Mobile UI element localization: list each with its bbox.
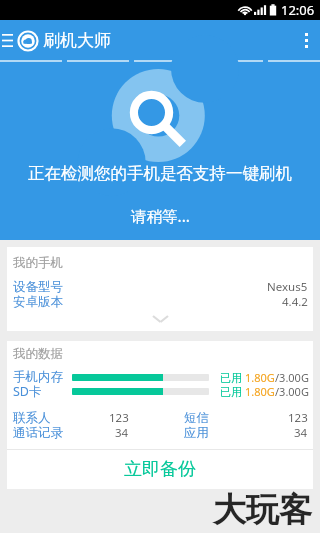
staticText: 34: [115, 425, 129, 441]
staticText: 联系人: [13, 410, 51, 426]
staticText: /3.00G: [275, 370, 309, 385]
staticText: 1.80G: [245, 370, 275, 385]
button[interactable]: 设备型号: [7, 279, 313, 295]
staticText: 34: [294, 425, 308, 441]
staticText: 短信: [184, 410, 209, 426]
button[interactable]: 应用: [184, 425, 308, 441]
staticText: 手机内存: [13, 369, 72, 385]
staticText: 我的数据: [13, 346, 63, 362]
staticText: 1.80G: [245, 384, 275, 399]
staticText: 12:06: [281, 1, 315, 19]
staticText: 4.4.2: [282, 294, 308, 310]
staticText: 123: [109, 410, 129, 426]
staticText: 安卓版本: [13, 294, 63, 310]
button[interactable]: 安卓版本: [7, 294, 313, 310]
button[interactable]: Menu: [0, 20, 14, 61]
staticText: 正在检测您的手机是否支持一键刷机: [28, 163, 292, 184]
staticText: 大玩客: [213, 489, 312, 531]
staticText: 已用: [220, 370, 245, 385]
staticText: Nexus5: [267, 279, 308, 295]
staticText: 我的手机: [13, 255, 63, 271]
button[interactable]: 短信: [184, 410, 308, 426]
button[interactable]: 通话记录: [13, 425, 129, 441]
staticText: 已用: [220, 384, 245, 399]
staticText: SD卡: [13, 383, 72, 399]
staticText: 设备型号: [13, 279, 63, 295]
staticText: 请稍等...: [131, 205, 190, 226]
staticText: 123: [288, 410, 308, 426]
button[interactable]: 立即备份: [7, 450, 313, 489]
button[interactable]: More options: [292, 20, 320, 61]
staticText: 立即备份: [124, 458, 196, 481]
staticText: /3.00G: [275, 384, 309, 399]
staticText: 刷机大师: [43, 30, 111, 51]
staticText: 通话记录: [13, 425, 63, 441]
button[interactable]: 联系人: [13, 410, 129, 426]
staticText: 应用: [184, 425, 209, 441]
